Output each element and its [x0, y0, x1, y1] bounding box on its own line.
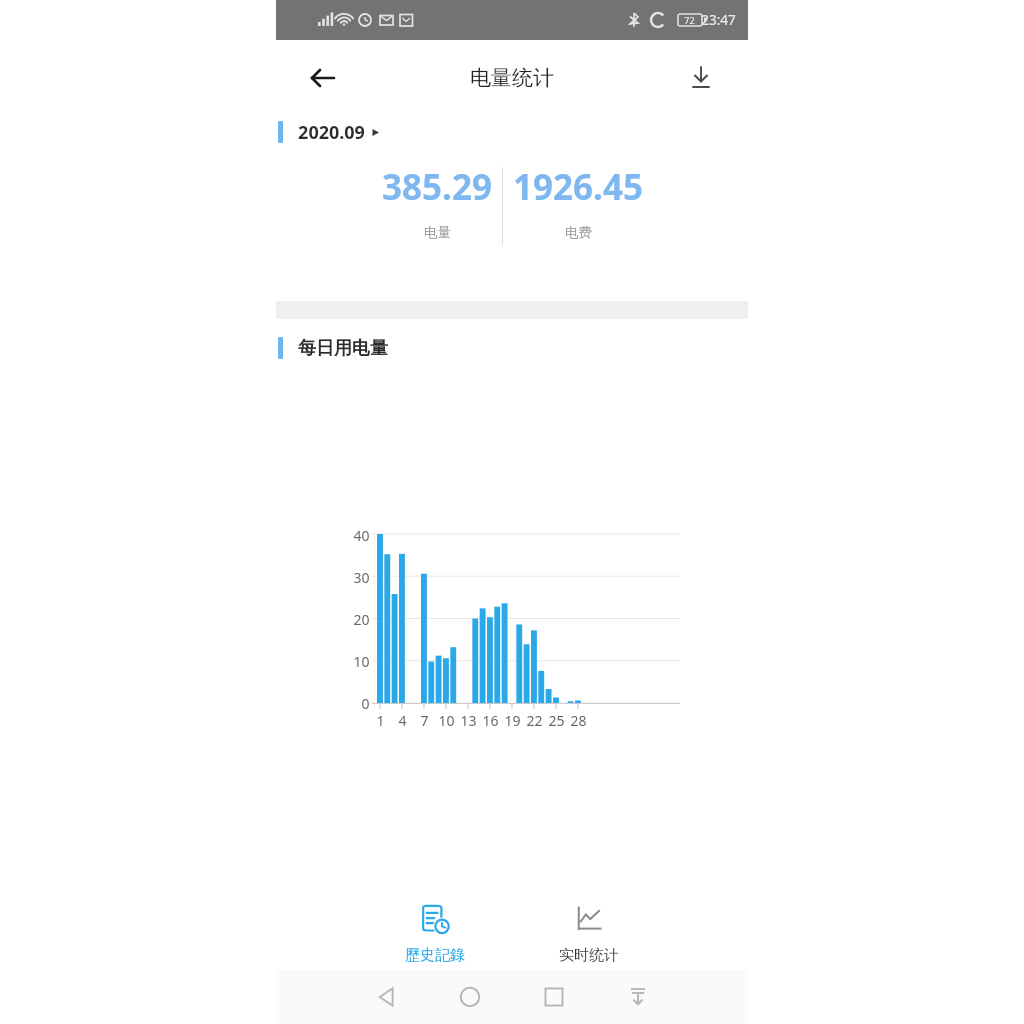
- staticText: 30: [353, 568, 370, 587]
- staticText: 2020.09: [298, 120, 365, 145]
- button[interactable]: Recent apps: [512, 970, 596, 1024]
- staticText: 1: [376, 711, 385, 730]
- staticText: 28: [570, 711, 587, 730]
- staticText: 10: [438, 711, 455, 730]
- button[interactable]: Back: [302, 57, 344, 99]
- button[interactable]: Back: [344, 970, 428, 1024]
- staticText: 每日用电量: [298, 337, 388, 360]
- button[interactable]: Download: [680, 57, 722, 99]
- staticText: 电量统计: [470, 65, 554, 91]
- button[interactable]: Home: [428, 970, 512, 1024]
- staticText: 40: [353, 526, 370, 545]
- staticText: 13: [460, 711, 477, 730]
- staticText: 22: [526, 711, 543, 730]
- staticText: 20: [353, 610, 370, 629]
- button[interactable]: 2020.09: [276, 115, 748, 149]
- staticText: 电费: [565, 224, 592, 241]
- staticText: 0: [361, 694, 370, 713]
- staticText: 1926.45: [513, 163, 643, 211]
- button[interactable]: 歷史記錄: [380, 885, 490, 965]
- staticText: 72: [684, 14, 695, 26]
- button[interactable]: 385.29: [372, 163, 502, 241]
- staticText: 19: [504, 711, 521, 730]
- button[interactable]: 实时统计: [534, 885, 644, 965]
- staticText: 实时统计: [559, 946, 619, 965]
- staticText: 电量: [424, 224, 451, 241]
- button[interactable]: Pull down notifications: [596, 970, 680, 1024]
- staticText: 23:47: [701, 11, 736, 29]
- staticText: 25: [548, 711, 565, 730]
- staticText: 16: [482, 711, 499, 730]
- staticText: 4: [398, 711, 407, 730]
- staticText: 10: [353, 652, 370, 671]
- staticText: 歷史記錄: [405, 946, 465, 965]
- staticText: 385.29: [382, 163, 492, 211]
- staticText: 7: [420, 711, 429, 730]
- button[interactable]: 1926.45: [503, 163, 653, 241]
